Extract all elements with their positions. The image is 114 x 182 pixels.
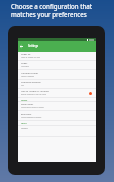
staticText: Order	[21, 62, 28, 65]
button[interactable]: About	[18, 126, 96, 137]
staticText: Choose a configuration that	[11, 2, 92, 10]
staticText: Bulk filter	[21, 113, 32, 116]
staticText: Checkbox position	[21, 81, 41, 84]
staticText: Order by	[21, 53, 31, 56]
button[interactable]: Bulk filter	[18, 112, 96, 121]
button[interactable]: Link to Netflix or YouTube	[18, 89, 96, 98]
staticText: Name or original air date	[21, 56, 40, 58]
button[interactable]: ABOUT	[18, 121, 96, 126]
staticText: Choose episodes to display	[21, 116, 42, 118]
staticText: Left	[21, 84, 24, 86]
staticText: Ascending	[21, 65, 29, 67]
staticText: FILTERS	[21, 99, 28, 101]
button[interactable]: Back	[18, 43, 25, 50]
button[interactable]: Number format	[18, 71, 96, 80]
button[interactable]: Series filter	[18, 102, 96, 111]
staticText: Link to Netflix or YouTube	[21, 90, 49, 93]
button[interactable]: FILTERS	[18, 98, 96, 102]
staticText: ABOUT	[21, 122, 27, 124]
button[interactable]: Checkbox position	[18, 80, 96, 89]
button[interactable]: Order by	[18, 52, 96, 61]
staticText: About	[21, 127, 28, 130]
staticText: Choose which series to display	[21, 106, 44, 108]
staticText: Series filter	[21, 103, 34, 106]
staticText: matches your preferences	[11, 10, 87, 18]
staticText: Settings	[28, 44, 39, 48]
button[interactable]: Order	[18, 61, 96, 70]
staticText: Season x Episode	[21, 75, 34, 77]
staticText: Number format	[21, 72, 38, 75]
staticText: Display available in the Play Store	[21, 93, 46, 95]
